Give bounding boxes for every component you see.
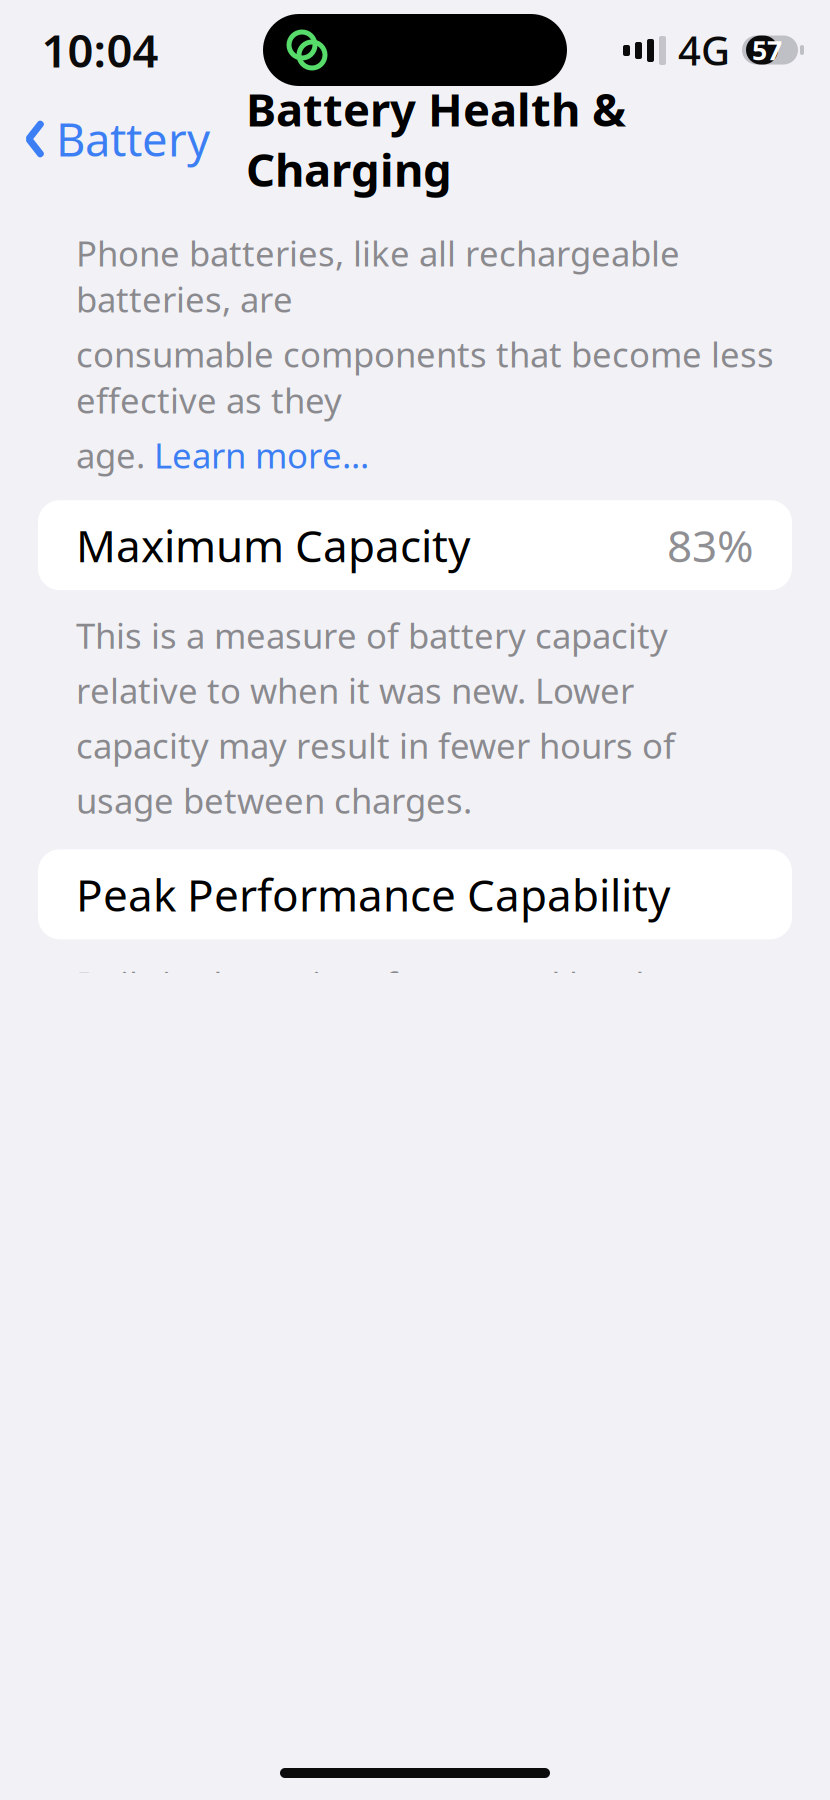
staticText: 57 [752,32,782,68]
button[interactable]: Peak Performance Capability [38,849,792,939]
button[interactable]: Maximum Capacity [38,500,792,590]
staticText: 4G [678,23,730,76]
staticText: Peak Performance Capability [76,865,670,923]
staticText: 10:04 [41,20,158,80]
staticText: Learn more... [154,432,369,478]
staticText: 83% [667,516,754,574]
staticText: This is a measure of battery capacity re… [76,612,675,823]
staticText: Phone batteries, like all rechargeable b… [76,230,680,322]
button[interactable]: Battery [0,99,210,179]
staticText: age. [76,432,154,478]
staticText: Maximum Capacity [76,516,470,574]
button[interactable]: Learn more... [154,432,369,478]
staticText: Battery [56,109,210,169]
staticText: Battery Health & Charging [246,79,626,199]
staticText: consumable components that become less e… [76,331,774,423]
